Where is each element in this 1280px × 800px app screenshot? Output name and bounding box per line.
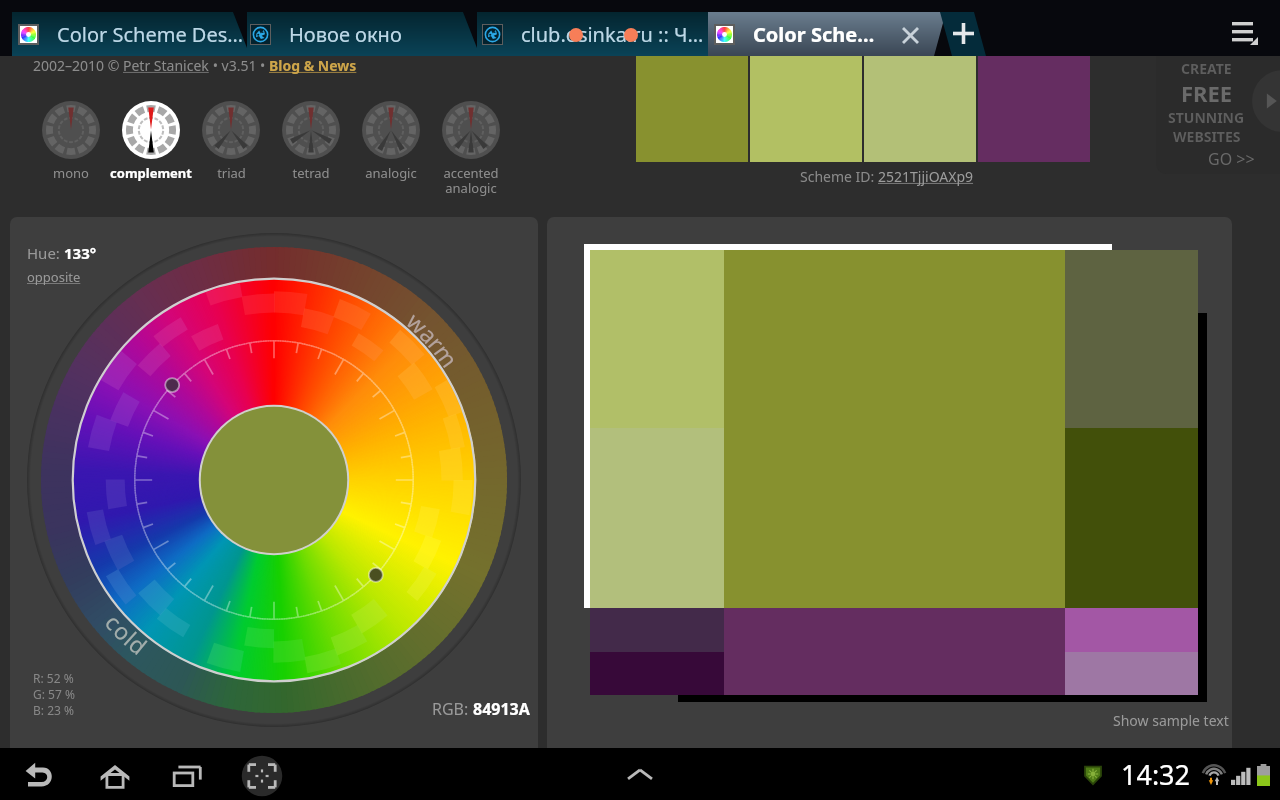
staticText: GO >> [1208,148,1255,170]
staticText: Hue: [27,243,64,263]
button[interactable]: Новое окно [250,12,476,56]
button[interactable]: 2521TjjiOAXp9 [878,167,974,186]
staticText: FREE [1181,78,1233,108]
staticText: 14:32 [1121,756,1191,793]
button[interactable]: Home [93,754,137,798]
staticText: RGB: [432,698,473,720]
staticText: accented analogic [443,164,499,197]
button[interactable]: tetrad [271,101,351,182]
button[interactable]: Recent apps [166,754,210,798]
button[interactable]: triad [191,101,271,182]
staticText: Новое окно [289,21,402,48]
staticText: mono [53,164,89,182]
button[interactable]: 14:32 [1083,756,1270,793]
staticText: 84913A [473,698,530,720]
staticText: club.osinka.ru :: Ч… [521,21,704,48]
staticText: Scheme ID: [800,167,878,186]
staticText: 2002–2010 © [33,56,123,75]
staticText: analogic [365,164,417,182]
button[interactable]: Blog & News [269,56,357,75]
button[interactable]: New tab [946,16,980,50]
button[interactable]: Show navigation [612,748,668,800]
button[interactable]: Back [18,754,62,798]
staticText: Color Sche… [753,21,875,48]
staticText: tetrad [292,164,330,182]
staticText: R: 52 % [33,670,74,686]
button[interactable]: Show sample text [1113,711,1229,730]
button[interactable]: club.osinka.ru :: Ч… [482,12,708,56]
button[interactable]: Close tab [893,18,927,52]
button[interactable]: mono [31,101,111,182]
staticText: G: 57 % [33,686,75,702]
staticText: WEBSITES [1173,127,1241,146]
button[interactable]: Color Scheme Des… [18,12,246,56]
staticText: CREATE [1181,59,1232,78]
button[interactable]: complement [111,101,191,182]
button[interactable]: Screenshot [240,754,284,798]
staticText: B: 23 % [33,702,74,718]
staticText: triad [217,164,246,182]
button[interactable]: accented analogic [431,101,511,197]
button[interactable]: Color Sche… [714,12,894,56]
staticText: complement [110,164,192,182]
button[interactable]: analogic [351,101,431,182]
staticText: • v3.51 • [209,56,269,75]
staticText: Color Scheme Des… [57,21,244,48]
button[interactable]: Menu [1220,7,1268,55]
button[interactable]: Petr Stanicek [123,56,209,75]
button[interactable]: opposite [27,268,81,286]
staticText: STUNNING [1168,108,1245,127]
staticText: 133° [64,243,97,263]
button[interactable]: CREATE [1156,56,1280,174]
